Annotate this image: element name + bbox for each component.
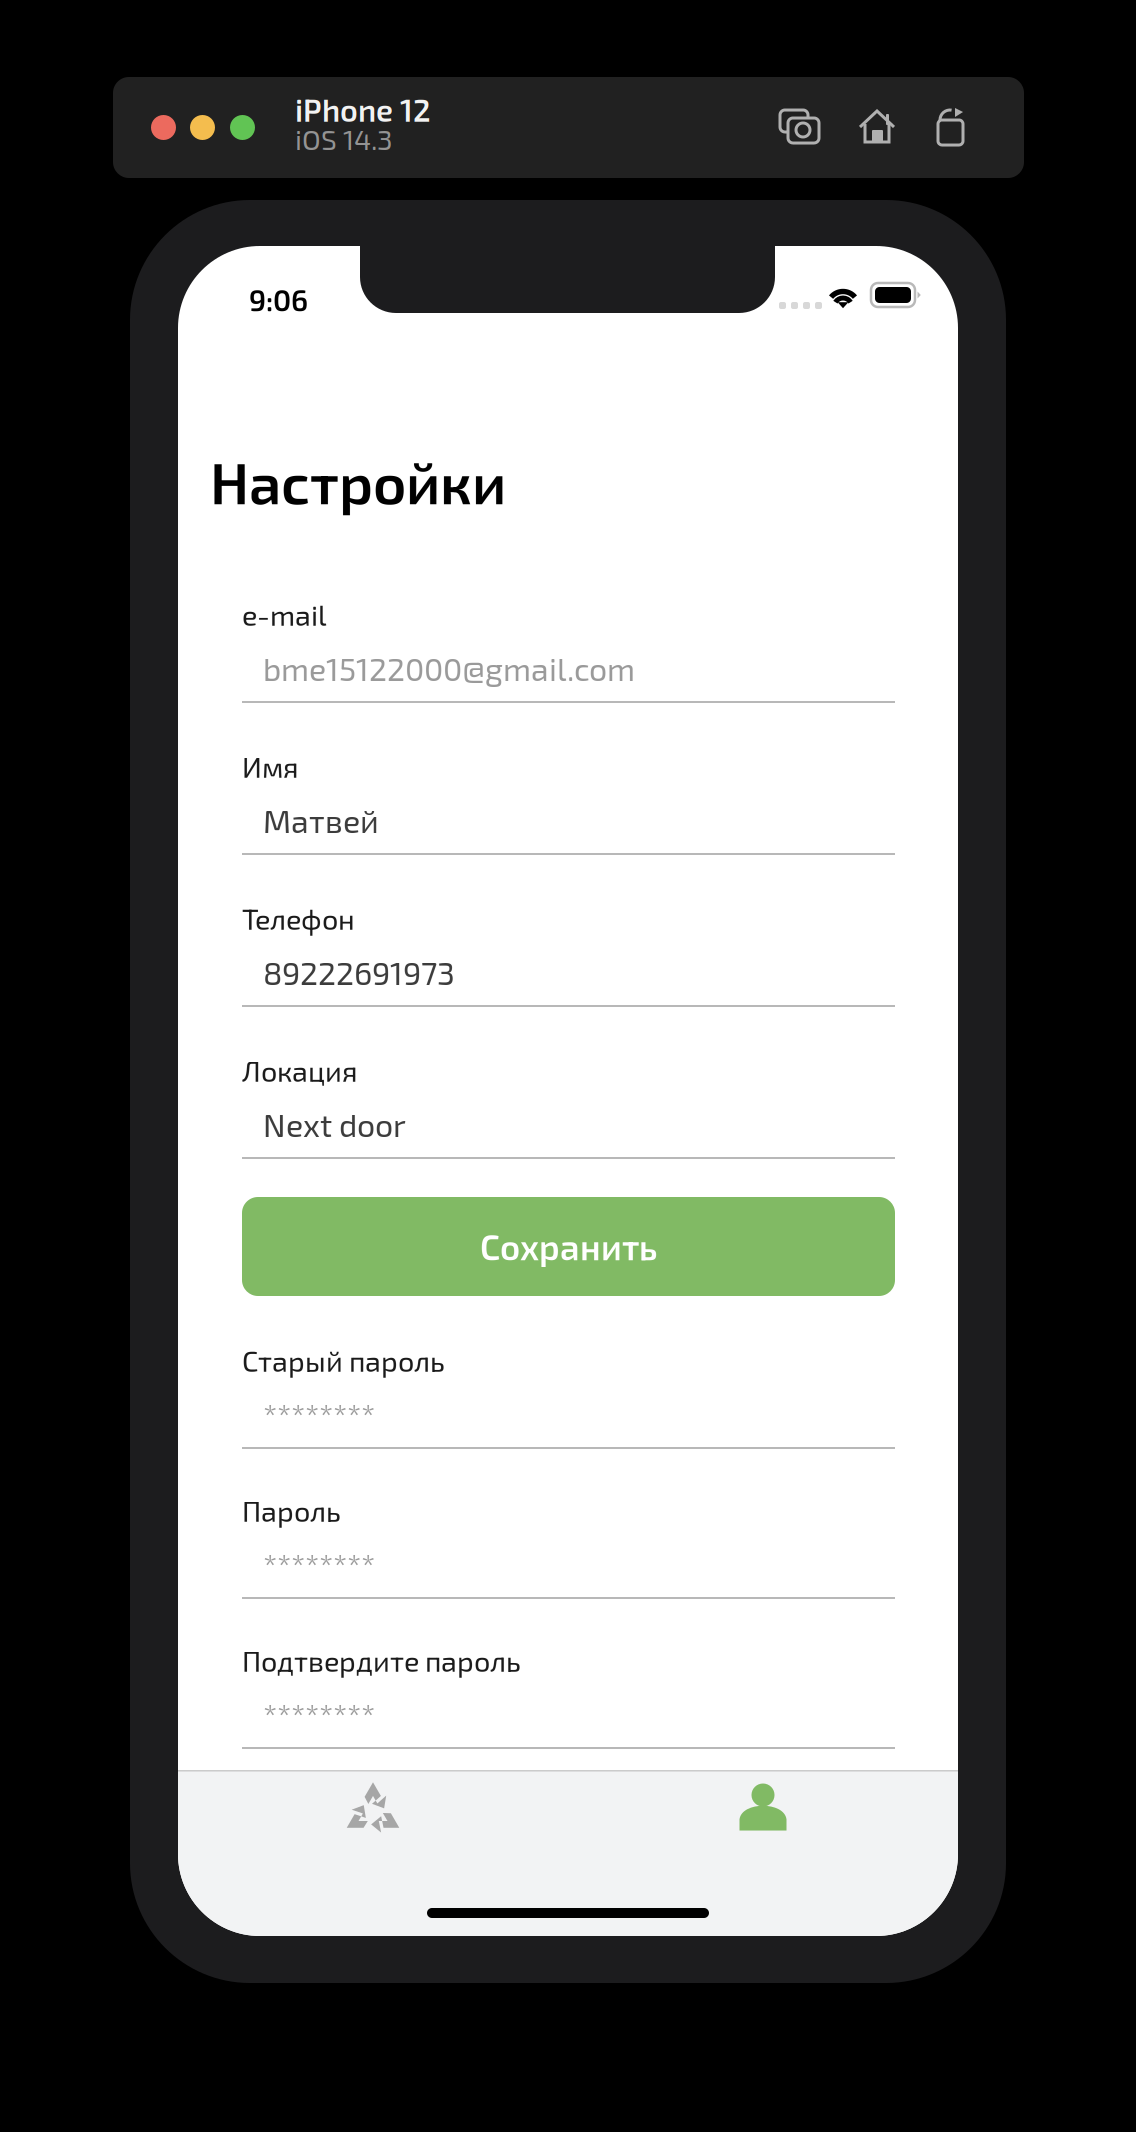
staticText: iOS 14.3 — [295, 122, 393, 156]
staticText: Настройки — [210, 447, 506, 516]
staticText: 9:06 — [249, 282, 308, 317]
staticText: Телефон — [242, 901, 355, 935]
staticText: Пароль — [242, 1493, 341, 1527]
staticText: Имя — [242, 749, 299, 783]
staticText: 89222691973 — [263, 953, 455, 991]
staticText: Подтвердите пароль — [242, 1643, 521, 1677]
staticText: Сохранить — [480, 1226, 657, 1267]
button[interactable]: Profile — [568, 1770, 958, 1844]
button[interactable]: Сохранить — [242, 1197, 895, 1296]
button[interactable]: Screenshot — [780, 108, 822, 146]
staticText: ******** — [263, 1395, 375, 1433]
staticText: ******** — [263, 1545, 375, 1583]
button[interactable]: Home — [859, 108, 897, 146]
staticText: ******** — [263, 1695, 375, 1733]
staticText: iPhone 12 — [295, 91, 431, 128]
staticText: Next door — [263, 1105, 406, 1143]
staticText: Старый пароль — [242, 1343, 445, 1377]
staticText: Матвей — [263, 801, 379, 839]
staticText: e-mail — [242, 597, 327, 631]
staticText: bme15122000@gmail.com — [263, 649, 635, 687]
button[interactable]: Recycling — [178, 1770, 568, 1844]
staticText: Локация — [242, 1053, 358, 1087]
button[interactable]: Rotate — [933, 108, 969, 146]
